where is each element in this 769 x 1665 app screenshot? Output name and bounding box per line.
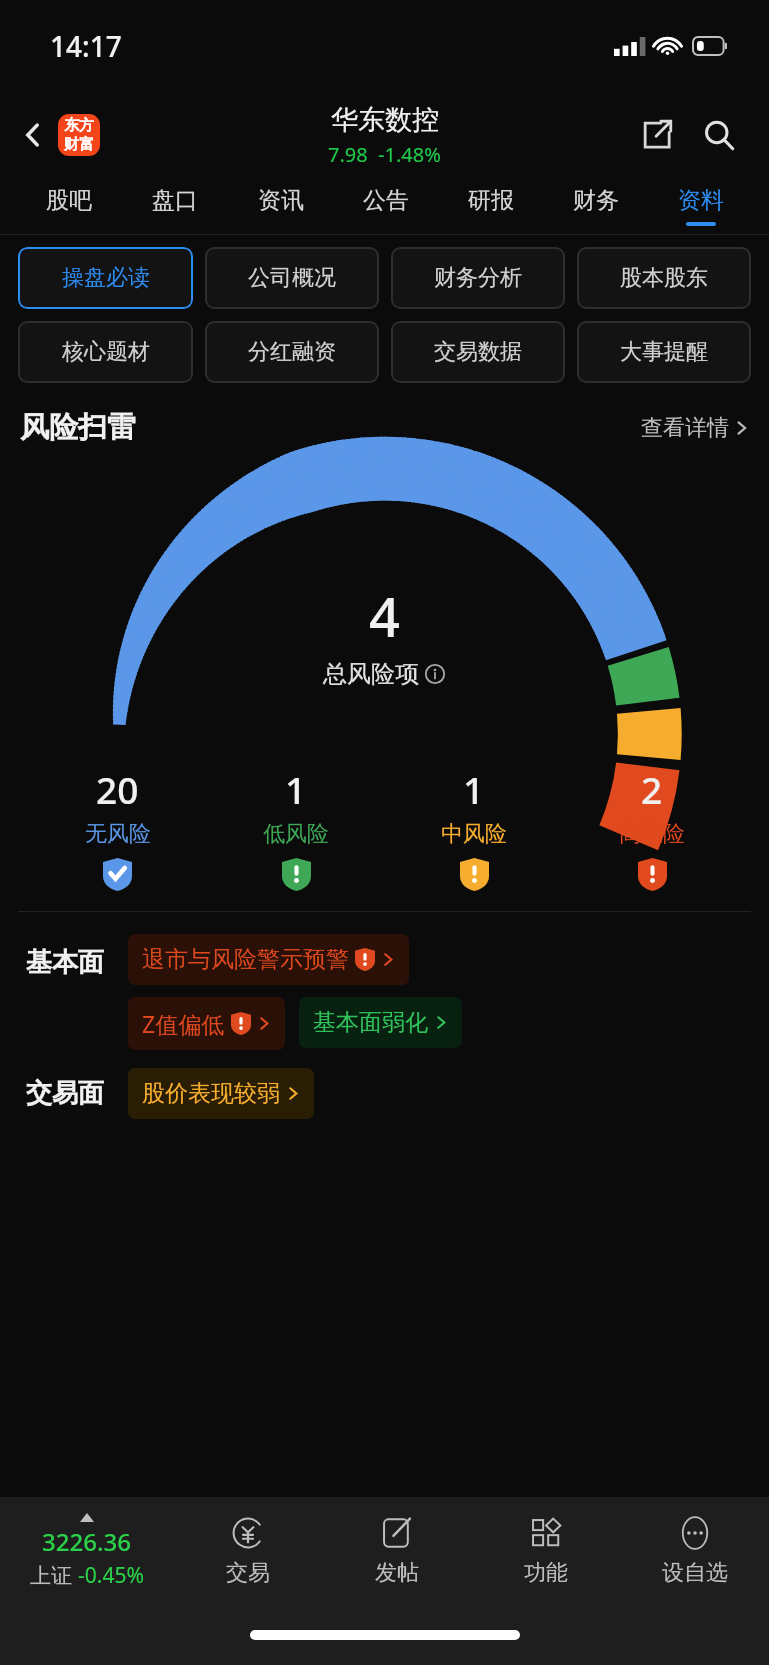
staticText: 7.98 -1.48%	[328, 141, 441, 168]
button[interactable]: 股本股东	[20, 1625, 749, 1662]
button[interactable]: Info	[424, 663, 446, 685]
staticText: 资料	[678, 186, 724, 215]
button[interactable]: 操盘必读	[18, 247, 193, 309]
button[interactable]: 交易	[173, 1515, 322, 1587]
staticText: 20	[96, 764, 139, 814]
staticText: Z值偏低	[142, 1008, 225, 1039]
staticText: 1	[285, 764, 307, 814]
button[interactable]: 资讯	[228, 178, 333, 234]
staticText: 1	[463, 764, 485, 814]
button[interactable]: 股价表现较弱	[128, 1068, 314, 1119]
staticText: 14:17	[50, 27, 122, 65]
staticText: 查看详情	[641, 414, 729, 442]
staticText: 基本面弱化	[313, 1008, 428, 1037]
button[interactable]: 公司概况	[205, 247, 379, 309]
staticText: 功能	[524, 1559, 568, 1587]
button[interactable]: 1	[207, 764, 385, 891]
staticText: 4	[369, 579, 400, 653]
button[interactable]: 风险扫雷	[20, 409, 749, 446]
staticText: 盘口	[152, 186, 198, 215]
button[interactable]: 研报	[438, 178, 543, 234]
staticText: 分红融资	[248, 338, 336, 366]
staticText: 风险扫雷	[20, 409, 136, 446]
button[interactable]: 功能	[471, 1515, 620, 1587]
staticText: 公司概况	[248, 264, 336, 292]
staticText: 交易面	[26, 1077, 104, 1110]
button[interactable]: 东方财富	[58, 114, 100, 156]
staticText: 财务分析	[434, 264, 522, 292]
button[interactable]: 核心题材	[18, 321, 193, 383]
button[interactable]: 3226.36	[0, 1513, 173, 1590]
staticText: 财富	[64, 135, 94, 154]
button[interactable]: Z值偏低	[128, 997, 285, 1050]
staticText: 低风险	[263, 820, 329, 848]
staticText: 股吧	[46, 186, 92, 215]
button[interactable]: 分红融资	[205, 321, 379, 383]
button[interactable]: 1	[385, 764, 563, 891]
button[interactable]: 财务分析	[391, 247, 565, 309]
staticText: 设自选	[662, 1559, 728, 1587]
button[interactable]: 盘口	[122, 178, 228, 234]
staticText: 东方	[64, 116, 94, 135]
button[interactable]: 公告	[333, 178, 438, 234]
button[interactable]: 股吧	[16, 178, 122, 234]
staticText: 研报	[468, 186, 514, 215]
button[interactable]: 基本面弱化	[299, 997, 462, 1048]
staticText: 股价表现较弱	[142, 1079, 280, 1108]
button[interactable]: 20	[28, 764, 207, 891]
staticText: 无风险	[85, 820, 151, 848]
staticText: 基本面	[26, 946, 104, 979]
staticText: 2	[641, 764, 663, 814]
staticText: 华东数控	[331, 103, 439, 137]
button[interactable]: 退市与风险警示预警	[128, 934, 409, 985]
staticText: 发帖	[375, 1559, 419, 1587]
button[interactable]: 2	[563, 764, 741, 891]
staticText: 3226.36	[42, 1525, 131, 1558]
staticText: 操盘必读	[62, 264, 150, 292]
staticText: 资讯	[258, 186, 304, 215]
staticText: 上证	[30, 1561, 78, 1590]
staticText: 股本股东	[620, 264, 708, 292]
staticText: -0.45%	[78, 1561, 144, 1590]
button[interactable]: Search	[693, 109, 745, 161]
staticText: 核心题材	[62, 338, 150, 366]
staticText: 公告	[363, 186, 409, 215]
button[interactable]: Back	[10, 112, 56, 158]
staticText: 退市与风险警示预警	[142, 945, 349, 974]
staticText: 交易数据	[434, 338, 522, 366]
button[interactable]: 交易数据	[391, 321, 565, 383]
button[interactable]: 设自选	[620, 1515, 769, 1587]
button[interactable]: 股本股东	[577, 247, 751, 309]
staticText: 交易	[226, 1559, 270, 1587]
staticText: 高风险	[619, 820, 685, 848]
button[interactable]: 大事提醒	[577, 321, 751, 383]
button[interactable]: 资料	[648, 178, 753, 234]
staticText: 大事提醒	[620, 338, 708, 366]
staticText: 总风险项	[323, 659, 419, 689]
staticText: 财务	[573, 186, 619, 215]
button[interactable]: Share	[631, 109, 683, 161]
staticText: 中风险	[441, 820, 507, 848]
button[interactable]: 财务	[543, 178, 648, 234]
button[interactable]: 发帖	[322, 1515, 471, 1587]
